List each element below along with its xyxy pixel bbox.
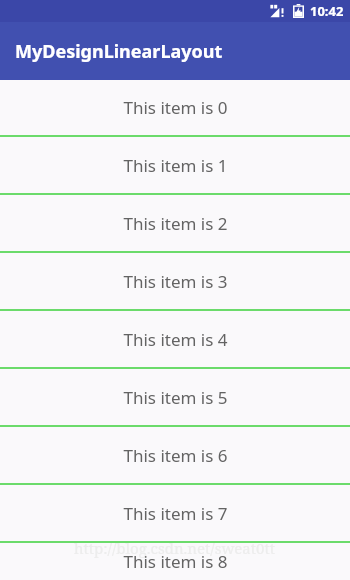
staticText: This item is 5 xyxy=(123,386,228,409)
button[interactable]: MyDesignLinearLayout xyxy=(0,22,350,80)
button[interactable]: This item is 6 xyxy=(0,427,350,485)
other: Mobile signal 4G xyxy=(270,4,288,18)
staticText: This item is 0 xyxy=(123,96,228,119)
button[interactable]: This item is 4 xyxy=(0,311,350,369)
staticText: This item is 1 xyxy=(123,154,228,177)
button[interactable]: This item is 0 xyxy=(0,80,350,137)
staticText: This item is 8 xyxy=(123,550,228,573)
staticText: This item is 2 xyxy=(123,212,228,235)
other: Battery xyxy=(293,4,304,18)
staticText: This item is 4 xyxy=(123,328,228,351)
button[interactable]: This item is 2 xyxy=(0,195,350,253)
button[interactable]: This item is 3 xyxy=(0,253,350,311)
staticText: This item is 3 xyxy=(123,270,228,293)
staticText: This item is 6 xyxy=(123,444,228,467)
staticText: MyDesignLinearLayout xyxy=(15,39,223,64)
staticText: 10:42 xyxy=(310,2,344,20)
button[interactable]: This item is 5 xyxy=(0,369,350,427)
staticText: This item is 7 xyxy=(123,502,228,525)
button[interactable]: This item is 1 xyxy=(0,137,350,195)
button[interactable]: This item is 8 xyxy=(0,543,350,580)
button[interactable]: This item is 7 xyxy=(0,485,350,543)
staticText: http://blog.csdn.net/sweat0tt xyxy=(74,538,276,558)
